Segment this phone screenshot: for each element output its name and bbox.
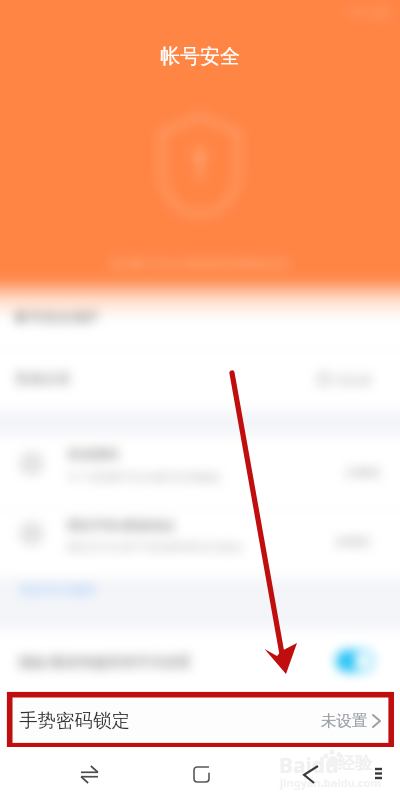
staticText: 未设置 — [321, 711, 368, 731]
staticText: 去修改 — [345, 464, 381, 479]
staticText: 帐号安全 — [160, 44, 240, 69]
button[interactable]: Recent apps — [73, 758, 105, 790]
staticText: Baidu — [279, 751, 339, 780]
staticText: 实名认证 — [15, 370, 71, 388]
staticText: 绑定手机/邮箱地址 — [67, 516, 176, 534]
button[interactable]: Menu — [363, 758, 393, 788]
button[interactable]: Home — [185, 758, 217, 790]
staticText: 未绑定 — [335, 534, 371, 549]
staticText: 为了您的帐号安全建议定期修改 — [67, 470, 221, 484]
button[interactable]: 实名认证 — [0, 349, 400, 409]
staticText: 经验 — [338, 753, 372, 774]
staticText: 您的帐号安全等级较高请继续保持 — [110, 256, 290, 271]
button[interactable]: 登录密码 — [0, 440, 400, 508]
button[interactable]: Back — [295, 758, 327, 790]
button[interactable]: 指纹/面容快捷登录开关设置 — [0, 630, 400, 692]
staticText: 指纹/面容快捷登录开关设置 — [18, 652, 192, 671]
button[interactable]: 手势密码锁定 — [9, 695, 391, 746]
staticText: 手势密码锁定 — [19, 709, 130, 732]
staticText: 帐号安全保护 — [15, 309, 99, 327]
staticText: jingyan.baidu.com — [280, 775, 382, 790]
button[interactable]: 帐号安全保护 — [0, 288, 400, 348]
button[interactable]: 绑定手机/邮箱地址 — [0, 510, 400, 578]
staticText: 更多安全服务 — [19, 581, 97, 597]
staticText: 登录密码 — [67, 446, 119, 462]
